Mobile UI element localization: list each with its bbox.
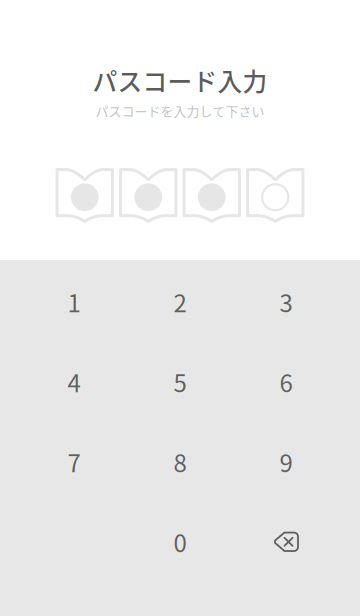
button[interactable]: 1 xyxy=(21,262,127,342)
button[interactable]: 7 xyxy=(21,422,127,502)
staticText: 5 xyxy=(173,364,186,399)
button[interactable]: Delete xyxy=(233,502,339,582)
staticText: 3 xyxy=(279,284,292,319)
staticText: 4 xyxy=(67,364,80,399)
staticText: 1 xyxy=(67,284,80,319)
staticText: 0 xyxy=(173,524,186,559)
button[interactable]: 6 xyxy=(233,342,339,422)
button[interactable]: 8 xyxy=(127,422,233,502)
staticText: パスコード入力 xyxy=(92,62,267,98)
staticText: 7 xyxy=(67,444,80,479)
staticText: 9 xyxy=(279,444,292,479)
button[interactable]: 2 xyxy=(127,262,233,342)
staticText: 6 xyxy=(279,364,292,399)
button[interactable]: 5 xyxy=(127,342,233,422)
button[interactable]: 3 xyxy=(233,262,339,342)
staticText: パスコードを入力して下さい xyxy=(95,101,264,120)
button[interactable]: 9 xyxy=(233,422,339,502)
staticText: 8 xyxy=(173,444,186,479)
button[interactable]: 4 xyxy=(21,342,127,422)
staticText: 2 xyxy=(173,284,186,319)
button[interactable]: 0 xyxy=(127,502,233,582)
